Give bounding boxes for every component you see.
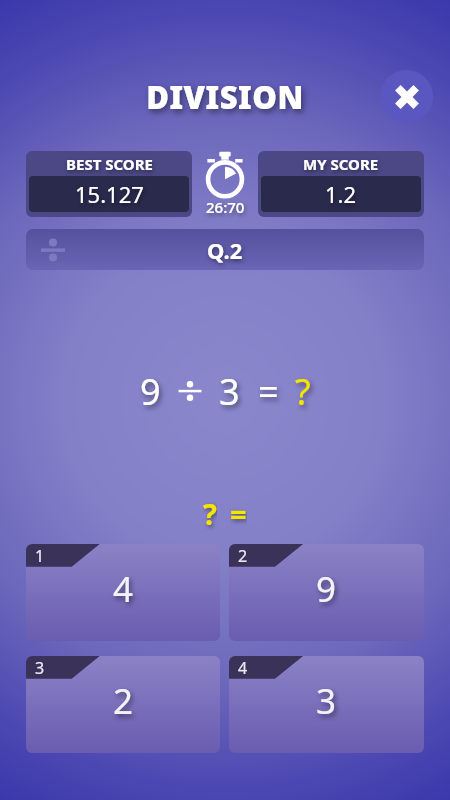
button[interactable]: BEST SCORE bbox=[26, 151, 192, 217]
staticText: ? bbox=[295, 367, 311, 416]
button[interactable]: 3 bbox=[26, 656, 220, 753]
staticText: = bbox=[258, 367, 279, 416]
staticText: 3 bbox=[316, 677, 337, 725]
button[interactable]: 1 bbox=[26, 544, 220, 641]
staticText: Q.2 bbox=[207, 235, 243, 265]
staticText: 1 bbox=[35, 545, 45, 567]
staticText: 4 bbox=[113, 565, 134, 613]
staticText: 1.2 bbox=[325, 179, 357, 209]
staticText: 4 bbox=[238, 657, 248, 679]
staticText: 3 bbox=[35, 657, 45, 679]
button[interactable]: 4 bbox=[229, 656, 424, 753]
staticText: BEST SCORE bbox=[66, 154, 153, 174]
button[interactable]: Q.2 bbox=[26, 229, 424, 270]
button[interactable]: Close bbox=[380, 70, 433, 123]
staticText: 9 bbox=[316, 565, 337, 613]
button[interactable]: 2 bbox=[229, 544, 424, 641]
staticText: 3 bbox=[219, 367, 240, 416]
staticText: 2 bbox=[238, 545, 248, 567]
staticText: 26:70 bbox=[206, 197, 245, 217]
staticText: DIVISION bbox=[146, 76, 304, 118]
staticText: 9 bbox=[140, 367, 161, 416]
staticText: ? bbox=[203, 494, 217, 530]
staticText: 15.127 bbox=[75, 179, 144, 209]
staticText: MY SCORE bbox=[303, 154, 379, 174]
staticText: = bbox=[230, 494, 247, 530]
button[interactable]: MY SCORE bbox=[258, 151, 424, 217]
staticText: 2 bbox=[113, 677, 134, 725]
